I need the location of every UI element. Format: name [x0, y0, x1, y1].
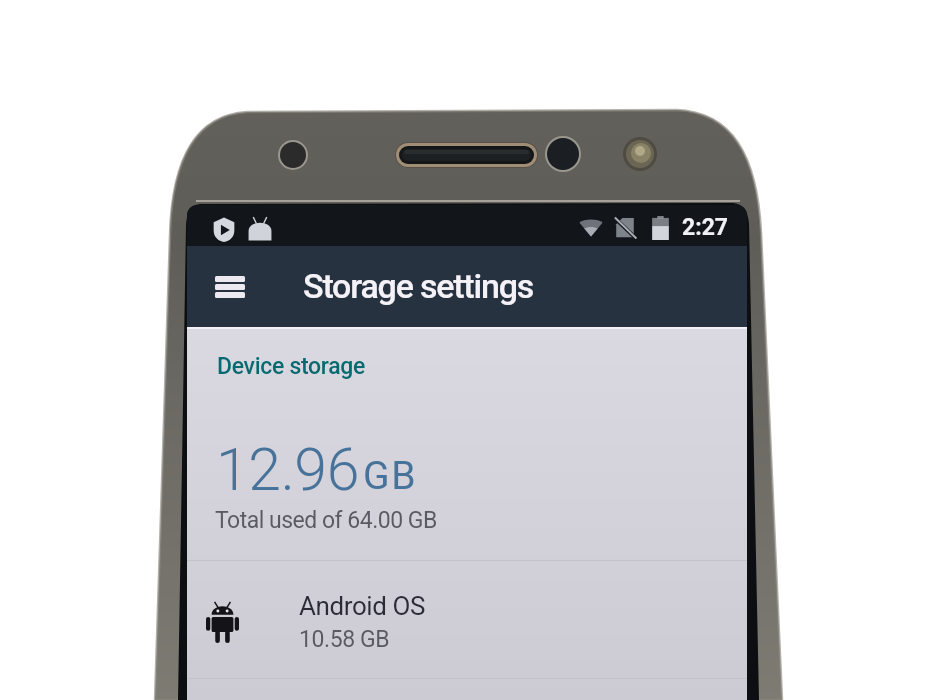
staticText: Device storage [217, 353, 366, 380]
staticText: Storage settings [303, 266, 534, 306]
staticText: 2:27 [682, 214, 729, 241]
staticText: Android OS [299, 591, 426, 621]
button[interactable]: 12.96 [187, 397, 747, 560]
staticText: 10.58 GB [299, 626, 390, 653]
staticText: 12.96 [216, 435, 359, 504]
button[interactable]: Android OS [187, 561, 747, 679]
staticText: Total used of 64.00 GB [215, 507, 437, 534]
staticText: GB [363, 453, 418, 499]
button[interactable]: Open navigation menu [201, 261, 257, 313]
